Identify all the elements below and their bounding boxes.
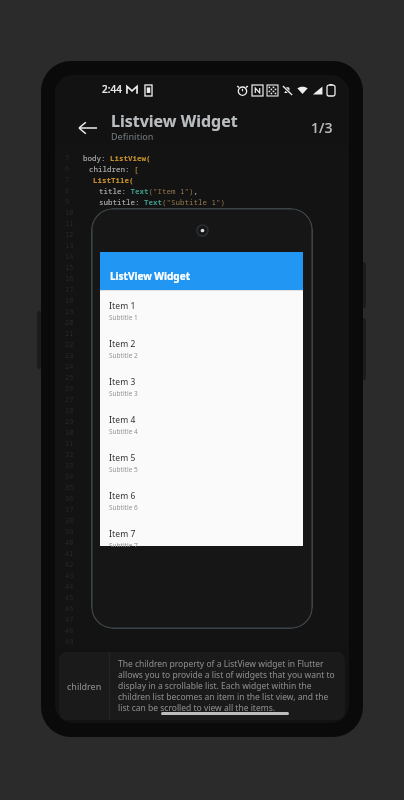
staticText: 38 — [65, 516, 74, 527]
staticText: children: [ — [89, 164, 139, 175]
staticText: 14 — [65, 252, 74, 263]
staticText: 18 — [65, 296, 74, 307]
staticText: Definition — [111, 130, 154, 142]
staticText: 2:44 — [102, 82, 122, 96]
staticText: 35 — [65, 483, 74, 494]
staticText: 41 — [65, 549, 74, 560]
staticText: 7 — [65, 175, 70, 186]
button[interactable]: Item 3 — [100, 366, 303, 404]
staticText: 29 — [65, 417, 74, 428]
staticText: Item 7 — [109, 528, 136, 540]
staticText: 9 — [65, 197, 70, 208]
staticText: 30 — [65, 428, 74, 439]
staticText: 1/3 — [311, 118, 333, 137]
staticText: Item 1 — [109, 300, 136, 312]
staticText: 33 — [65, 461, 74, 472]
staticText: 16 — [65, 274, 74, 285]
button[interactable]: children — [59, 652, 345, 720]
staticText: 13 — [65, 241, 74, 252]
staticText: 48 — [65, 626, 74, 637]
staticText: 44 — [65, 582, 74, 593]
staticText: 21 — [65, 329, 74, 340]
staticText: 12 — [65, 230, 74, 241]
staticText: The children property of a ListView widg… — [118, 658, 339, 713]
staticText: Item 4 — [109, 414, 136, 426]
staticText: 31 — [65, 439, 74, 450]
staticText: Subtitle 3 — [109, 389, 138, 398]
staticText: Item 3 — [109, 376, 136, 388]
staticText: 42 — [65, 560, 74, 571]
staticText: 27 — [65, 395, 74, 406]
staticText: 32 — [65, 450, 74, 461]
staticText: children — [67, 680, 102, 692]
staticText: title: Text("Item 1"), — [99, 186, 198, 197]
button[interactable]: Item 2 — [100, 328, 303, 366]
staticText: 25 — [65, 373, 74, 384]
staticText: 17 — [65, 285, 74, 296]
staticText: Subtitle 4 — [109, 427, 138, 436]
staticText: 34 — [65, 472, 74, 483]
staticText: 47 — [65, 615, 74, 626]
staticText: body: ListView( — [83, 153, 151, 164]
staticText: 19 — [65, 307, 74, 318]
staticText: 24 — [65, 362, 74, 373]
staticText: 37 — [65, 505, 74, 516]
staticText: Subtitle 5 — [109, 465, 138, 474]
staticText: 20 — [65, 318, 74, 329]
staticText: 10 — [65, 208, 74, 219]
staticText: Item 6 — [109, 490, 136, 502]
staticText: Subtitle 1 — [109, 313, 138, 322]
staticText: ListTile( — [93, 175, 134, 186]
staticText: 36 — [65, 494, 74, 505]
staticText: ListView Widget — [110, 269, 190, 283]
staticText: subtitle: Text("Subtitle 1") — [99, 197, 225, 208]
staticText: Listview Widget — [111, 110, 238, 132]
staticText: Item 5 — [109, 452, 136, 464]
button[interactable]: Item 4 — [100, 404, 303, 442]
staticText: Subtitle 6 — [109, 503, 138, 512]
button[interactable]: Item 5 — [100, 442, 303, 480]
staticText: 8 — [65, 186, 70, 197]
staticText: 43 — [65, 571, 74, 582]
staticText: Subtitle 7 — [109, 541, 138, 547]
staticText: 23 — [65, 351, 74, 362]
staticText: 22 — [65, 340, 74, 351]
staticText: 11 — [65, 219, 74, 230]
staticText: 46 — [65, 604, 74, 615]
button[interactable]: Item 7 — [100, 518, 303, 546]
button[interactable]: Back — [71, 111, 105, 145]
staticText: 5 — [65, 153, 70, 164]
staticText: Subtitle 2 — [109, 351, 138, 360]
staticText: 45 — [65, 593, 74, 604]
staticText: 28 — [65, 406, 74, 417]
staticText: 39 — [65, 527, 74, 538]
staticText: 26 — [65, 384, 74, 395]
staticText: 6 — [65, 164, 70, 175]
staticText: Item 2 — [109, 338, 136, 350]
staticText: 15 — [65, 263, 74, 274]
button[interactable]: Item 6 — [100, 480, 303, 518]
staticText: 40 — [65, 538, 74, 549]
staticText: 49 — [65, 637, 74, 648]
button[interactable]: Item 1 — [100, 291, 303, 328]
